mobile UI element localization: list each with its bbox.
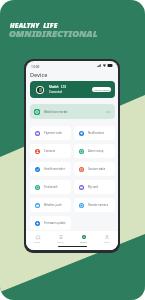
staticText: Watch face market (44, 110, 68, 114)
staticText: Contacts (44, 149, 56, 153)
staticText: Alarm setup (88, 149, 104, 153)
button[interactable]: Home (26, 231, 49, 245)
staticText: Mine (104, 241, 110, 244)
button[interactable]: Weather push (30, 198, 71, 212)
staticText: Gesture wake (88, 167, 106, 171)
button[interactable]: My card (74, 180, 115, 194)
button[interactable]: Remote camera (74, 198, 115, 212)
staticText: Firmware update (44, 221, 66, 225)
button[interactable]: Delete device (92, 87, 111, 92)
staticText: Model: L13 (49, 85, 66, 89)
button[interactable]: Payment code (30, 126, 71, 140)
button[interactable]: Notifications (74, 126, 115, 140)
staticText: Home (34, 241, 41, 244)
staticText: My card (88, 185, 99, 189)
staticText: 13:00 (31, 64, 40, 68)
staticText: Remote camera (88, 203, 108, 207)
button[interactable]: Alarm setup (74, 144, 115, 158)
staticText: Delete device (94, 88, 110, 91)
button[interactable]: Firmware update (30, 216, 71, 230)
staticText: Device (30, 71, 48, 78)
button[interactable]: Mine (95, 231, 118, 245)
button[interactable]: Model: L13 (30, 81, 115, 98)
staticText: Sports (57, 241, 64, 244)
button[interactable]: Watch face market (30, 104, 115, 119)
staticText: Payment code (44, 131, 62, 135)
staticText: HEALTHY LIFE (10, 21, 58, 30)
button[interactable]: Gesture wake (74, 162, 115, 176)
staticText: OMNIDIRECTIONAL (9, 27, 98, 40)
button[interactable]: Find watch (30, 180, 71, 194)
staticText: Notifications (88, 131, 104, 135)
button[interactable]: Health reminder (30, 162, 71, 176)
button[interactable]: Sports (49, 231, 72, 245)
button[interactable]: Contacts (30, 144, 71, 158)
button[interactable]: Device (72, 231, 95, 245)
staticText: Connected (49, 90, 63, 94)
staticText: Find watch (44, 185, 58, 189)
staticText: Weather push (44, 203, 62, 207)
staticText: Health reminder (44, 167, 65, 171)
staticText: Device (80, 241, 87, 244)
